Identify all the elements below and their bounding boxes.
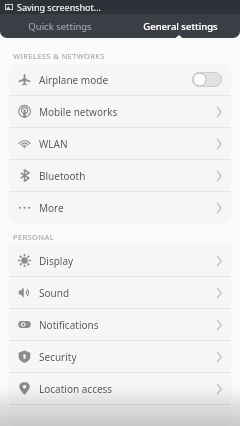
button[interactable]: Sound bbox=[9, 277, 231, 308]
button[interactable]: Security bbox=[9, 341, 231, 372]
button[interactable]: Quick settings bbox=[0, 14, 120, 38]
staticText: General settings bbox=[143, 20, 218, 33]
button[interactable]: Location access bbox=[9, 373, 231, 404]
staticText: Quick settings bbox=[28, 20, 92, 33]
staticText: More bbox=[39, 201, 64, 215]
staticText: Location access bbox=[39, 382, 113, 396]
staticText: Security bbox=[39, 350, 77, 364]
staticText: WIRELESS & NETWORKS bbox=[13, 51, 105, 61]
staticText: Saving screenshot... bbox=[17, 1, 102, 13]
staticText: Mobile networks bbox=[39, 105, 118, 119]
staticText: WLAN bbox=[39, 137, 68, 151]
staticText: Sound bbox=[39, 286, 70, 300]
button[interactable]: Mobile networks bbox=[9, 96, 231, 127]
staticText: PERSONAL bbox=[13, 232, 54, 242]
button[interactable]: More bbox=[9, 192, 231, 223]
staticText: Airplane mode bbox=[39, 73, 109, 87]
button[interactable]: Bluetooth bbox=[9, 160, 231, 191]
button[interactable]: Airplane mode bbox=[9, 64, 231, 95]
button[interactable]: General settings bbox=[120, 14, 240, 38]
staticText: Notifications bbox=[39, 318, 99, 332]
staticText: Display bbox=[39, 254, 74, 268]
button[interactable]: Notifications bbox=[9, 309, 231, 340]
button[interactable]: Airplane mode toggle bbox=[192, 72, 222, 87]
button[interactable]: WLAN bbox=[9, 128, 231, 159]
staticText: Bluetooth bbox=[39, 169, 86, 183]
button[interactable]: Display bbox=[9, 245, 231, 276]
